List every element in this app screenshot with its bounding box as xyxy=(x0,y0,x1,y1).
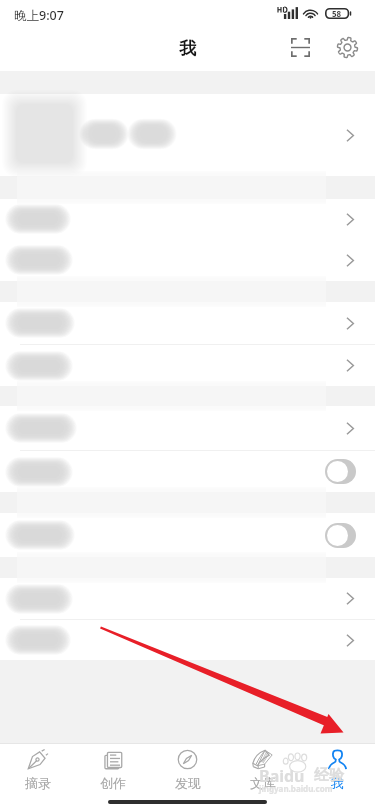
button[interactable]: 摘录 xyxy=(0,749,75,791)
button[interactable] xyxy=(0,620,375,660)
staticText: 创作 xyxy=(100,775,126,791)
staticText: 58 xyxy=(332,8,342,19)
staticText: 发现 xyxy=(175,775,201,791)
staticText: 摘录 xyxy=(25,775,51,791)
button[interactable] xyxy=(0,302,375,344)
button[interactable] xyxy=(0,406,375,450)
button[interactable] xyxy=(0,239,375,281)
button[interactable] xyxy=(0,199,375,239)
staticText: 我 xyxy=(331,775,344,791)
button[interactable] xyxy=(0,451,375,492)
staticText: 我 xyxy=(179,38,196,59)
button[interactable] xyxy=(0,578,375,619)
staticText: 经验 xyxy=(314,766,344,785)
button[interactable]: 我 xyxy=(300,749,375,791)
button[interactable] xyxy=(0,513,375,557)
button[interactable]: 创作 xyxy=(75,749,150,791)
button[interactable]: 发现 xyxy=(150,749,225,791)
staticText: jingyan.baidu.com xyxy=(259,783,333,794)
button[interactable]: 文库 xyxy=(225,749,300,791)
button[interactable] xyxy=(0,94,375,176)
staticText: 晚上9:07 xyxy=(14,7,64,24)
staticText: 文库 xyxy=(250,775,276,791)
button[interactable]: Settings xyxy=(325,25,369,69)
staticText: Baidu xyxy=(259,765,305,787)
button[interactable]: Scan code xyxy=(278,25,322,69)
button[interactable] xyxy=(0,345,375,386)
